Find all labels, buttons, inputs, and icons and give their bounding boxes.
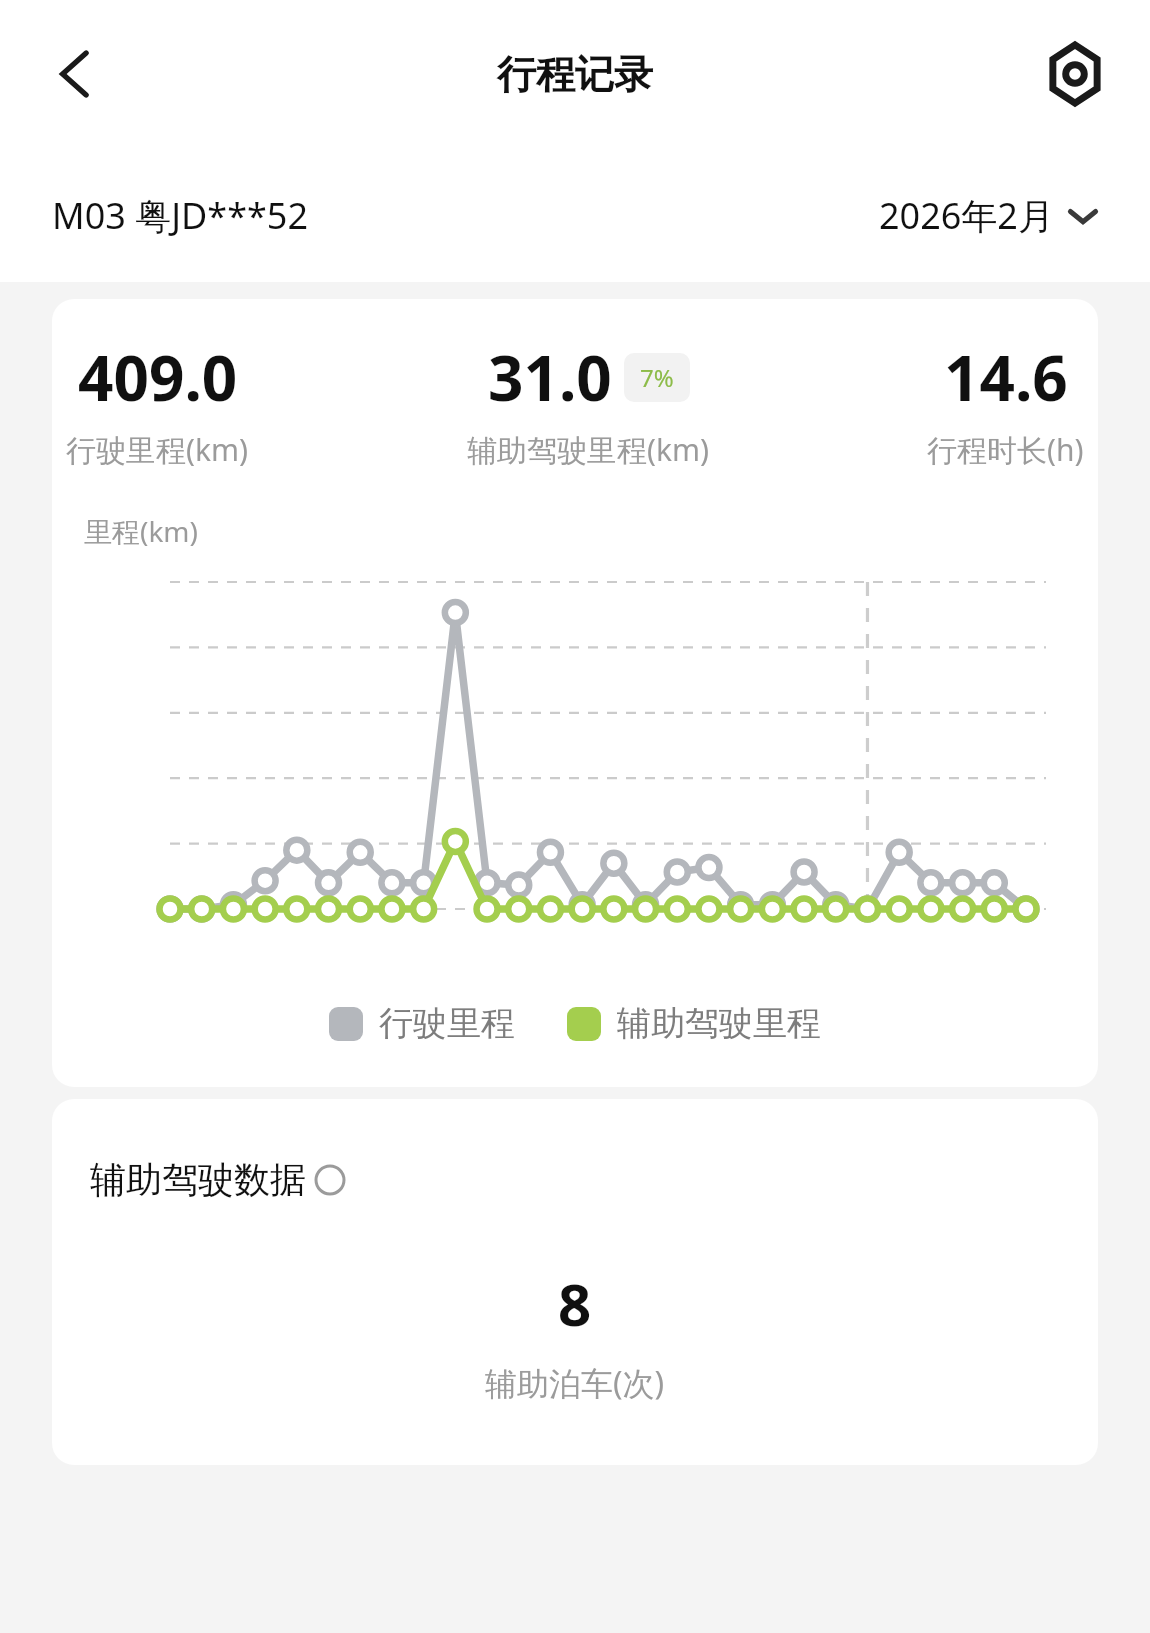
button[interactable]: 2026年2月 — [879, 191, 1098, 240]
other: Help — [314, 1164, 346, 1196]
staticText: 409.0 — [78, 335, 238, 419]
staticText: 辅助驾驶数据 — [90, 1157, 306, 1202]
staticText: 行驶里程 — [379, 1002, 515, 1045]
staticText: 行程时长(h) — [927, 429, 1084, 470]
staticText: 8 — [558, 1264, 592, 1343]
staticText: 14.6 — [944, 335, 1068, 419]
staticText: 行驶里程(km) — [66, 429, 249, 470]
staticText: 2026年2月 — [879, 191, 1054, 240]
button[interactable]: 行驶里程 — [329, 1002, 515, 1045]
button[interactable]: Back — [44, 43, 106, 105]
button[interactable]: 辅助驾驶数据 — [90, 1157, 346, 1202]
staticText: 31.0 — [488, 335, 612, 419]
staticText: M03 粤JD***52 — [52, 191, 308, 240]
staticText: 辅助泊车(次) — [485, 1361, 665, 1405]
staticText: 7% — [640, 361, 674, 394]
button[interactable]: Settings — [1042, 41, 1108, 107]
staticText: 行程记录 — [497, 50, 653, 99]
button[interactable]: 辅助驾驶里程 — [567, 1002, 821, 1045]
staticText: 里程(km) — [84, 512, 198, 550]
staticText: 辅助驾驶里程 — [617, 1002, 821, 1045]
staticText: 辅助驾驶里程(km) — [467, 429, 710, 470]
